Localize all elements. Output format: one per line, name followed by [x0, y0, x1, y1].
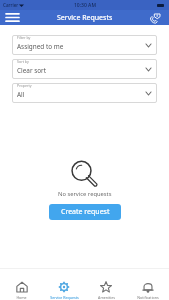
staticText: Property: [17, 83, 32, 88]
button[interactable]: Filter by: [12, 35, 157, 55]
staticText: Sort by: [17, 59, 29, 64]
staticText: Clear sort: [17, 66, 47, 75]
staticText: All: [17, 90, 25, 99]
staticText: Notifications: [137, 295, 159, 300]
staticText: Create request: [61, 207, 110, 217]
staticText: Filter by: [17, 35, 31, 40]
button[interactable]: Sort by: [12, 59, 157, 79]
staticText: Service Requests: [57, 13, 113, 23]
button[interactable]: Amenities: [85, 281, 127, 300]
button[interactable]: Create request: [49, 204, 121, 220]
staticText: Service Requests: [50, 295, 79, 300]
button[interactable]: Property: [12, 83, 157, 103]
button[interactable]: Home: [0, 281, 43, 300]
button[interactable]: Service Requests: [43, 281, 85, 300]
staticText: Amenities: [98, 295, 115, 300]
staticText: Home: [16, 295, 27, 300]
button[interactable]: Open navigation menu: [4, 10, 20, 25]
staticText: 10:30 AM: [74, 2, 96, 9]
button[interactable]: Notifications: [127, 281, 169, 300]
staticText: No service requests: [58, 190, 112, 198]
button[interactable]: Emergency call: [147, 10, 162, 25]
staticText: Assigned to me: [17, 42, 64, 51]
staticText: Carrier: [3, 2, 19, 8]
